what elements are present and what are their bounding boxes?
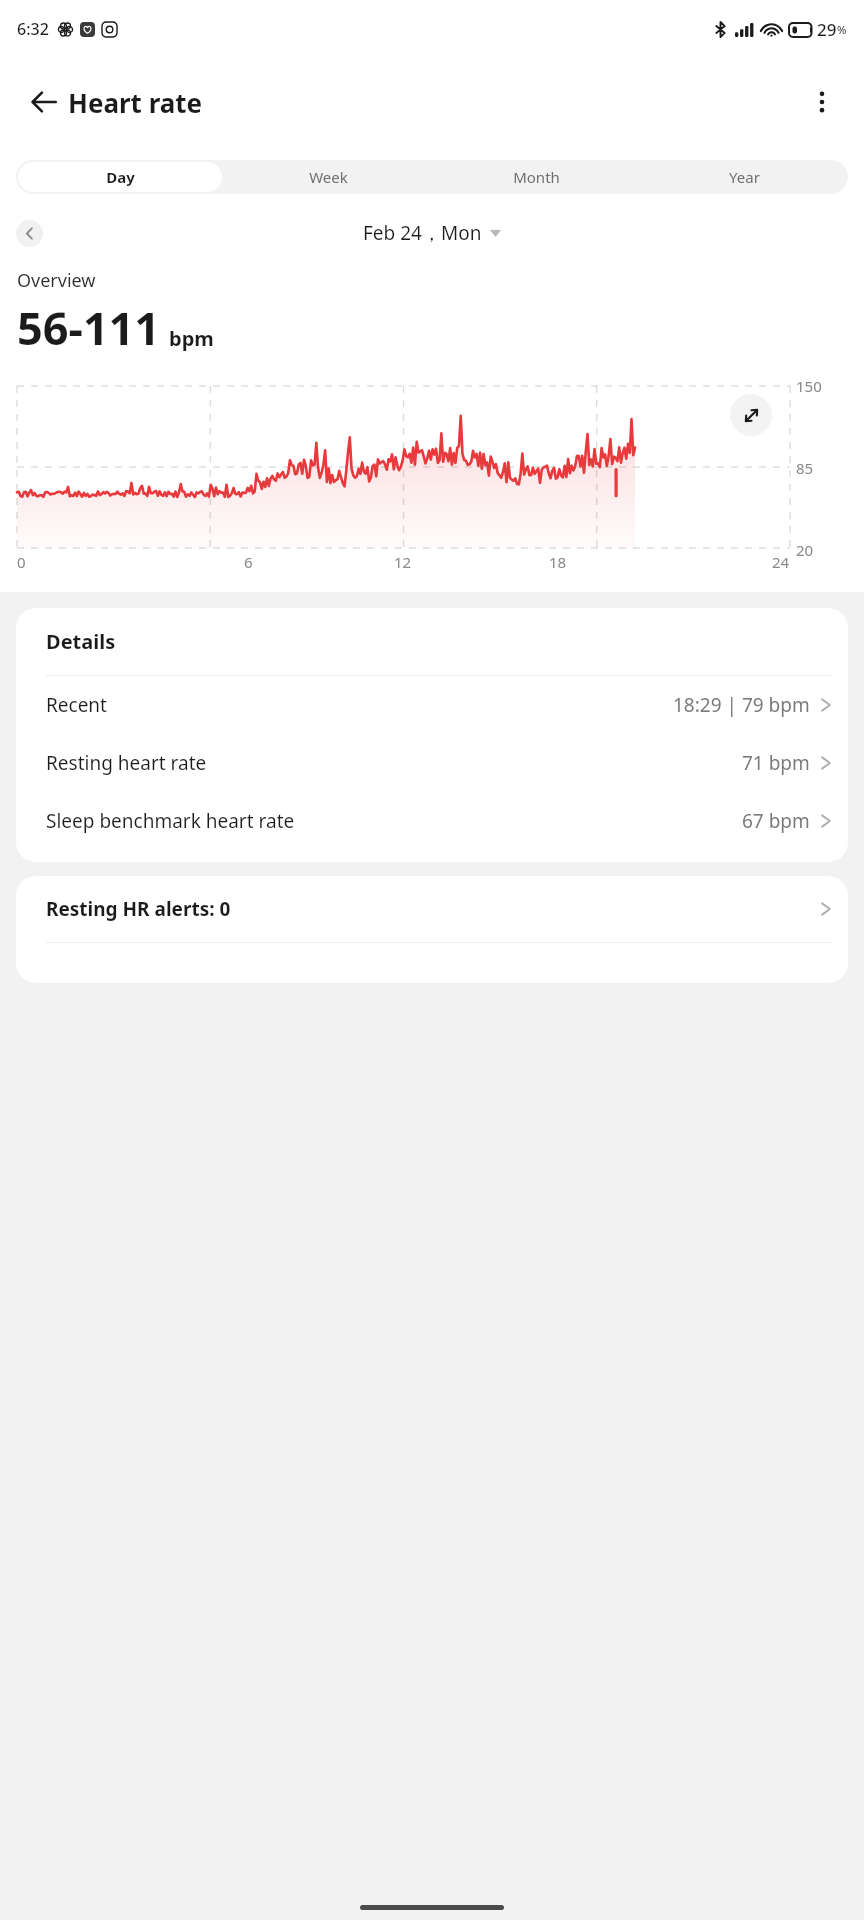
staticText: 85 xyxy=(796,458,814,478)
staticText: Feb 24，Mon xyxy=(363,220,482,246)
staticText: Month xyxy=(513,167,560,187)
staticText: Recent xyxy=(46,692,107,718)
staticText: Week xyxy=(309,167,348,187)
button[interactable]: Week xyxy=(226,162,430,192)
button[interactable]: Year xyxy=(642,162,846,192)
staticText: Heart rate xyxy=(68,85,203,120)
staticText: 18:29 | 79 bpm xyxy=(673,692,810,718)
button[interactable]: Month xyxy=(434,162,638,192)
button[interactable]: Day xyxy=(18,162,222,192)
staticText: 67 bpm xyxy=(742,808,810,834)
staticText: 18 xyxy=(549,552,567,572)
staticText: 6 xyxy=(244,552,253,572)
staticText: bpm xyxy=(169,325,214,352)
button[interactable]: Resting heart rate xyxy=(32,734,832,792)
button[interactable]: Previous day xyxy=(16,220,43,247)
button[interactable]: Sleep benchmark heart rate xyxy=(32,792,832,850)
staticText: 6:32 xyxy=(17,18,49,40)
staticText: 24 xyxy=(772,552,790,572)
button[interactable]: Resting HR alerts: 0 xyxy=(32,876,832,942)
staticText: Resting HR alerts: 0 xyxy=(46,896,231,922)
button[interactable]: Feb 24，Mon xyxy=(363,220,501,246)
staticText: 71 bpm xyxy=(742,750,810,776)
staticText: Resting heart rate xyxy=(46,750,207,776)
staticText: 150 xyxy=(796,376,822,396)
staticText: 0 xyxy=(17,552,26,572)
staticText: 20 xyxy=(796,540,814,560)
button[interactable]: More options xyxy=(798,78,846,126)
button[interactable]: Back xyxy=(20,78,68,126)
staticText: 29 xyxy=(817,18,837,41)
button[interactable]: Expand chart xyxy=(730,394,772,436)
staticText: Sleep benchmark heart rate xyxy=(46,808,295,834)
staticText: Year xyxy=(729,167,760,187)
staticText: Overview xyxy=(17,268,96,293)
button[interactable]: Recent xyxy=(32,676,832,734)
staticText: 12 xyxy=(394,552,412,572)
staticText: % xyxy=(837,22,847,37)
staticText: Day xyxy=(106,167,135,187)
staticText: 56-111 xyxy=(17,297,161,358)
staticText: Details xyxy=(46,628,116,655)
